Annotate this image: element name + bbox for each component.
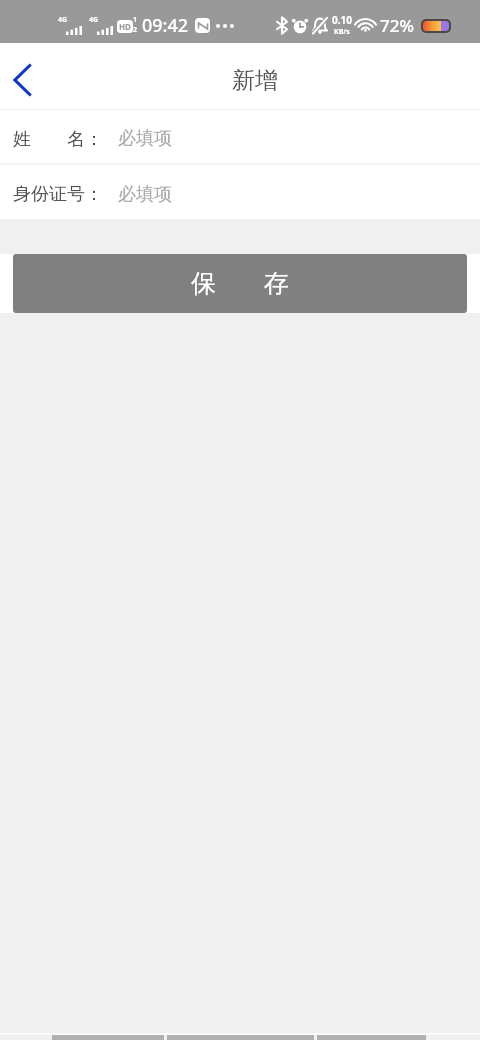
staticText: 新增 — [232, 66, 278, 95]
staticText: 姓 名： — [13, 126, 103, 151]
staticText: HD — [119, 21, 131, 32]
staticText: 2 — [133, 25, 138, 35]
staticText: 4G — [89, 15, 99, 25]
button[interactable]: Back — [0, 52, 46, 108]
staticText: 09:42 — [142, 13, 189, 38]
button[interactable]: 姓 名： — [0, 110, 480, 163]
staticText: 必填项 — [118, 183, 172, 206]
staticText: 1 — [133, 15, 138, 25]
staticText: 0.10 — [332, 13, 352, 27]
staticText: 72% — [380, 14, 414, 37]
staticText: 4G — [58, 15, 68, 25]
staticText: 必填项 — [118, 127, 172, 150]
button[interactable]: 保 — [13, 254, 467, 313]
staticText: 身份证号： — [13, 183, 103, 206]
staticText: 保 — [191, 268, 216, 299]
button[interactable]: 身份证号： — [0, 165, 480, 219]
staticText: KB/s — [334, 27, 350, 37]
staticText: 存 — [264, 268, 289, 299]
